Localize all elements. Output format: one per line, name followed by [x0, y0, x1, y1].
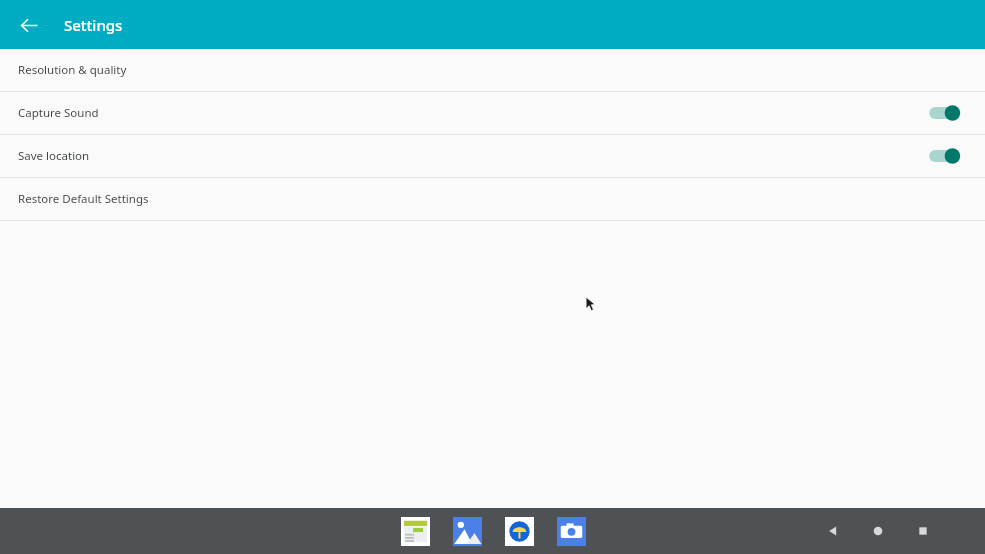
button[interactable]: Save location toggle — [925, 143, 963, 169]
button[interactable]: Weather — [501, 513, 537, 549]
staticText: Capture Sound — [18, 105, 99, 121]
button[interactable]: Restore Default Settings — [0, 178, 985, 220]
button[interactable]: Back — [819, 517, 847, 545]
staticText: Save location — [18, 148, 90, 164]
staticText: Resolution & quality — [18, 62, 127, 78]
button[interactable]: Resolution & quality — [0, 49, 985, 91]
button[interactable]: Gallery — [449, 513, 485, 549]
button[interactable]: Save location — [0, 135, 985, 177]
button[interactable]: Back — [12, 8, 46, 42]
button[interactable]: Capture Sound toggle — [925, 100, 963, 126]
button[interactable]: Capture Sound — [0, 92, 985, 134]
button[interactable]: Camera — [553, 513, 589, 549]
button[interactable]: Recents — [909, 517, 937, 545]
button[interactable]: Home — [864, 517, 892, 545]
staticText: Settings — [64, 15, 123, 35]
button[interactable]: Files — [397, 513, 433, 549]
staticText: Restore Default Settings — [18, 191, 149, 207]
